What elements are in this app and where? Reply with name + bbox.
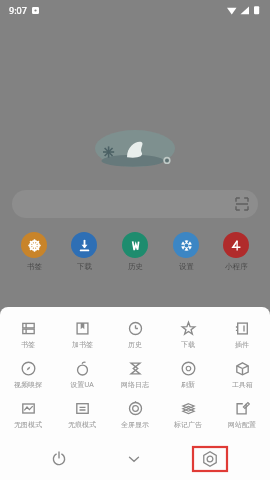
button[interactable]: 书签 xyxy=(3,315,53,355)
button[interactable]: Settings xyxy=(193,447,227,471)
button[interactable]: 设置 xyxy=(163,230,209,273)
button[interactable]: 标记广告 xyxy=(163,395,213,435)
button[interactable]: 设置UA xyxy=(57,355,107,395)
staticText: 刷新 xyxy=(181,380,195,389)
staticText: 设置UA xyxy=(70,380,94,390)
staticText: 工具箱 xyxy=(232,380,253,389)
button[interactable]: 下载 xyxy=(163,315,213,355)
staticText: 无图模式 xyxy=(14,420,42,429)
button[interactable]: 无图模式 xyxy=(3,395,53,435)
staticText: 历史 xyxy=(128,340,142,349)
staticText: 书签 xyxy=(27,262,42,271)
other: Scan xyxy=(236,198,248,210)
staticText: 网络日志 xyxy=(121,380,149,389)
staticText: 视频嗅探 xyxy=(14,380,42,389)
button[interactable]: 网络日志 xyxy=(110,355,160,395)
staticText: 下载 xyxy=(77,262,92,271)
staticText: 历史 xyxy=(128,262,143,271)
button[interactable]: 历史 xyxy=(112,230,158,273)
staticText: 下载 xyxy=(181,340,195,349)
button[interactable]: 无痕模式 xyxy=(57,395,107,435)
button[interactable]: Scan xyxy=(12,190,258,218)
staticText: 无痕模式 xyxy=(68,420,96,429)
button[interactable]: Collapse xyxy=(118,444,150,474)
staticText: 书签 xyxy=(21,340,35,349)
button[interactable]: 网站配置 xyxy=(217,395,267,435)
staticText: 小程序 xyxy=(225,262,248,271)
button[interactable]: 刷新 xyxy=(163,355,213,395)
button[interactable]: 书签 xyxy=(11,230,57,273)
button[interactable]: 全屏显示 xyxy=(110,395,160,435)
staticText: 全屏显示 xyxy=(121,420,149,429)
button[interactable]: 小程序 xyxy=(213,230,259,273)
button[interactable]: Exit xyxy=(43,444,75,474)
button[interactable]: 视频嗅探 xyxy=(3,355,53,395)
staticText: 插件 xyxy=(235,340,249,349)
button[interactable]: 工具箱 xyxy=(217,355,267,395)
button[interactable]: 历史 xyxy=(110,315,160,355)
staticText: 9:07 xyxy=(9,4,27,16)
button[interactable]: 下载 xyxy=(61,230,107,273)
button[interactable]: 加书签 xyxy=(57,315,107,355)
staticText: 加书签 xyxy=(72,340,93,349)
button[interactable]: 插件 xyxy=(217,315,267,355)
staticText: 标记广告 xyxy=(174,420,202,429)
staticText: 设置 xyxy=(179,262,194,271)
staticText: 网站配置 xyxy=(228,420,256,429)
